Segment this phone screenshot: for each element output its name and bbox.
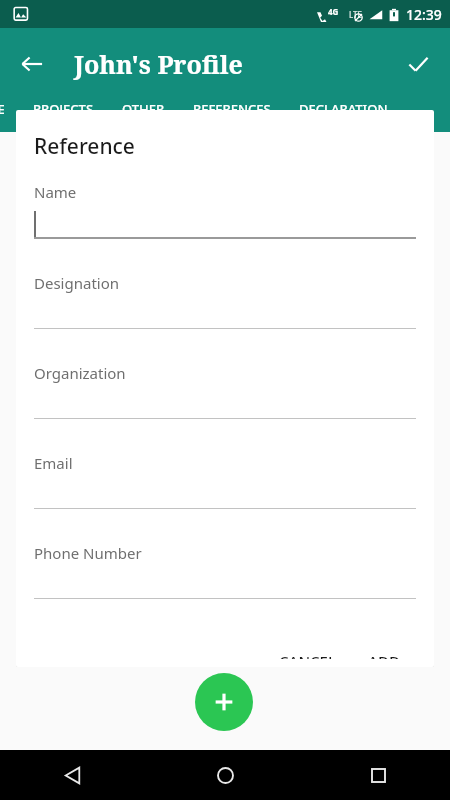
staticText: ADD	[368, 651, 400, 659]
button[interactable]: Home	[203, 753, 247, 797]
staticText: Name	[34, 182, 77, 202]
staticText: LTE	[349, 9, 362, 20]
button[interactable]: Recents	[356, 753, 400, 797]
button[interactable]: ENCE	[0, 100, 5, 118]
staticText: PROJECTS	[33, 100, 94, 118]
staticText: John's Profile	[74, 47, 243, 81]
staticText: CANCEL	[279, 651, 336, 659]
button[interactable]: REFERENCES	[193, 100, 271, 118]
staticText: ENCE	[0, 100, 5, 118]
staticText: DECLARATION	[299, 100, 388, 118]
button[interactable]: CANCEL	[271, 643, 344, 667]
staticText: Email	[34, 453, 73, 473]
staticText: Designation	[34, 273, 120, 293]
button[interactable]: OTHER	[122, 100, 165, 118]
staticText: 12:39	[406, 5, 442, 24]
button[interactable]: Back	[50, 753, 94, 797]
button[interactable]: Save	[394, 40, 442, 88]
staticText: Reference	[34, 132, 135, 161]
staticText: Phone Number	[34, 543, 142, 563]
button[interactable]: ADD	[360, 643, 408, 667]
button[interactable]: Add	[195, 673, 253, 731]
button[interactable]: Back	[8, 40, 56, 88]
staticText: Organization	[34, 363, 126, 383]
staticText: 4G	[328, 6, 339, 17]
button[interactable]: PROJECTS	[33, 100, 94, 118]
staticText: REFERENCES	[193, 100, 271, 118]
staticText: OTHER	[122, 100, 165, 118]
button[interactable]: DECLARATION	[299, 100, 388, 118]
